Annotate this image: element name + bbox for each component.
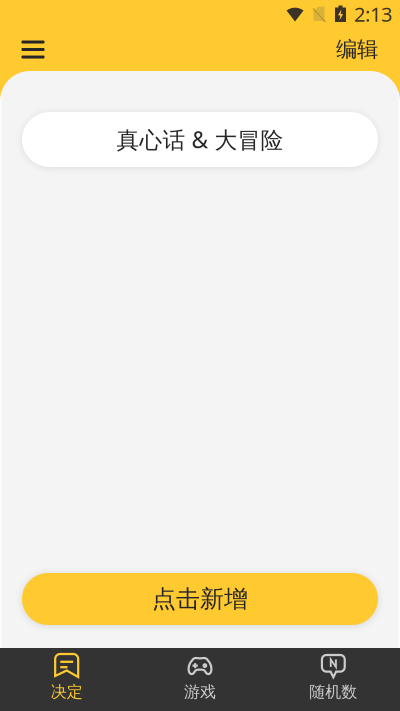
staticText: 随机数 — [309, 682, 357, 702]
button[interactable]: 点击新增 — [0, 573, 400, 625]
staticText: 决定 — [51, 682, 83, 702]
staticText: 编辑 — [336, 36, 378, 63]
staticText: 2:13 — [354, 1, 392, 27]
button[interactable]: 随机数 — [267, 648, 400, 711]
button[interactable]: 真心话 & 大冒险 — [0, 112, 400, 167]
button[interactable]: 决定 — [0, 648, 133, 711]
staticText: 点击新增 — [152, 584, 248, 614]
button[interactable]: 编辑 — [336, 28, 400, 71]
staticText: 游戏 — [184, 682, 216, 702]
staticText: 真心话 & 大冒险 — [116, 124, 283, 154]
button[interactable]: 游戏 — [133, 648, 267, 711]
button[interactable]: Menu — [0, 28, 66, 71]
